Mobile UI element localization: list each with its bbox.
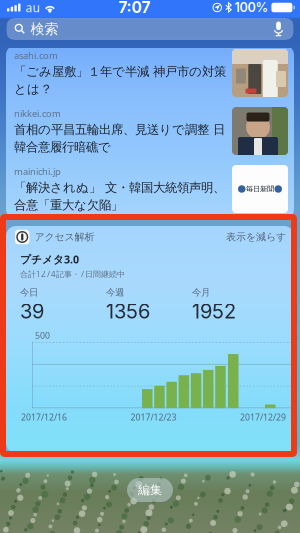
staticText: 首相の平昌五輪出席、見送りで調整 日 [14, 122, 225, 137]
staticText: nikkei.com [14, 107, 61, 120]
staticText: 「ごみ屋敷」１年で半減 神戸市の対策 [14, 64, 226, 79]
button[interactable]: 検索 [6, 18, 293, 40]
staticText: 表示を減らす [226, 231, 286, 243]
staticText: 編集 [138, 482, 162, 497]
staticText: 7:07 [118, 0, 150, 17]
staticText: 1356 [106, 299, 150, 323]
staticText: 2017/12/23 [130, 411, 176, 423]
staticText: アクセス解析 [34, 231, 94, 243]
staticText: 2017/12/29 [240, 411, 286, 423]
staticText: au [25, 0, 39, 16]
staticText: 100% [234, 0, 268, 15]
staticText: mainichi.jp [14, 165, 61, 178]
staticText: とは？ [14, 81, 52, 97]
button[interactable]: アクセス解析 [6, 226, 294, 248]
button[interactable]: mainichi.jp [6, 161, 294, 219]
staticText: 今週 [106, 286, 124, 298]
staticText: 今日 [20, 286, 38, 298]
staticText: 検索 [30, 20, 58, 38]
staticText: 合計1274記事・7日間継続中 [20, 268, 125, 279]
button[interactable]: nikkei.com [6, 103, 294, 161]
staticText: 今月 [192, 286, 210, 298]
button[interactable]: asahi.com [6, 45, 294, 103]
staticText: 「解決されぬ」 文・韓国大統領声明、 [14, 180, 225, 195]
staticText: 合意「重大な欠陥」 [14, 197, 123, 213]
staticText: 500 [35, 329, 50, 341]
staticText: 2017/12/16 [21, 411, 67, 423]
staticText: プチメタ3.0 [20, 252, 79, 266]
staticText: 毎日新聞 [246, 184, 274, 194]
staticText: 1952 [192, 299, 236, 323]
staticText: 39 [20, 299, 44, 323]
button[interactable]: 編集 [127, 478, 173, 502]
staticText: 韓合意履行暗礁で [14, 139, 111, 155]
staticText: asahi.com [14, 49, 58, 62]
